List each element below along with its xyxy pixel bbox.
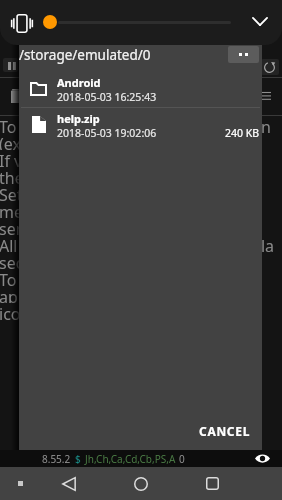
- button[interactable]: Ringer mode: vibrate: [8, 9, 36, 37]
- button[interactable]: Expand: [244, 5, 276, 37]
- button[interactable]: Volume: [43, 15, 57, 29]
- staticText: To empty the cache, open the: [0, 269, 221, 286]
- staticText: 2018-05-03 16:25:43: [57, 90, 157, 104]
- staticText: To select a file just tap on its name n: [0, 116, 271, 133]
- staticText: All of the processing is done on a pla: [0, 235, 275, 252]
- staticText: 240 KB: [225, 126, 260, 140]
- button[interactable]: Back: [52, 467, 85, 500]
- staticText: Settings are stored in the app: [0, 184, 221, 201]
- button[interactable]: CANCEL: [197, 420, 253, 442]
- staticText: Android: [57, 75, 101, 90]
- button[interactable]: IME switcher: [10, 467, 30, 500]
- staticText: 8.55.2: [42, 452, 71, 466]
- staticText: memory and nothing else is: [0, 201, 209, 218]
- staticText: securely on your own device.: [0, 252, 216, 269]
- button[interactable]: Recent apps: [196, 467, 229, 500]
- button[interactable]: Android: [19, 71, 262, 107]
- staticText: 0: [179, 452, 185, 466]
- staticText: /storage/emulated/0: [19, 46, 151, 64]
- staticText: icon at the bottom right.: [0, 303, 183, 320]
- button[interactable]: help.zip: [19, 107, 262, 143]
- button[interactable]: Toggle visibility: [252, 450, 272, 467]
- staticText: help.zip: [57, 111, 100, 126]
- staticText: then long press on its row.: [0, 167, 198, 184]
- staticText: Jh,Ch,Ca,Cd,Cb,PS,A: [85, 452, 176, 466]
- staticText: $: [75, 452, 81, 466]
- staticText: CANCEL: [199, 423, 251, 439]
- staticText: If you need a whole folder,: [0, 150, 198, 167]
- staticText: app info page and tap the: [0, 286, 194, 303]
- staticText: 2018-05-03 19:02:06: [57, 126, 157, 140]
- button[interactable]: Home: [124, 467, 157, 500]
- staticText: (expand folders by tapping): [0, 133, 206, 150]
- staticText: sent anywhere at any time.: [0, 218, 202, 235]
- button[interactable]: Up one level: [228, 46, 259, 63]
